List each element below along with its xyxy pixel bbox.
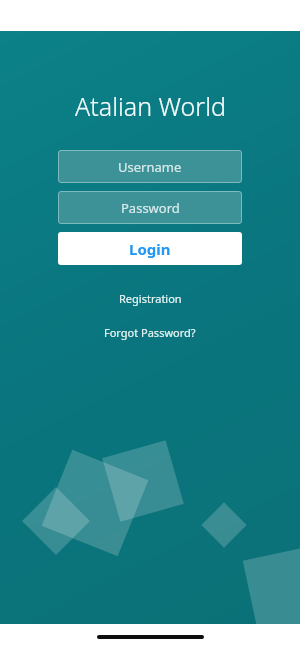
staticText: Registration xyxy=(119,291,182,306)
staticText: Password xyxy=(121,199,180,217)
staticText: Atalian World xyxy=(75,89,226,123)
staticText: Username xyxy=(118,158,182,176)
button[interactable]: Password xyxy=(58,191,242,224)
button[interactable]: Forgot Password? xyxy=(92,321,208,344)
other: Home xyxy=(97,635,204,639)
staticText: Login xyxy=(129,239,171,259)
button[interactable]: Login xyxy=(58,232,242,265)
staticText: Forgot Password? xyxy=(104,325,196,340)
button[interactable]: Registration xyxy=(107,287,194,310)
button[interactable]: Username xyxy=(58,150,242,183)
